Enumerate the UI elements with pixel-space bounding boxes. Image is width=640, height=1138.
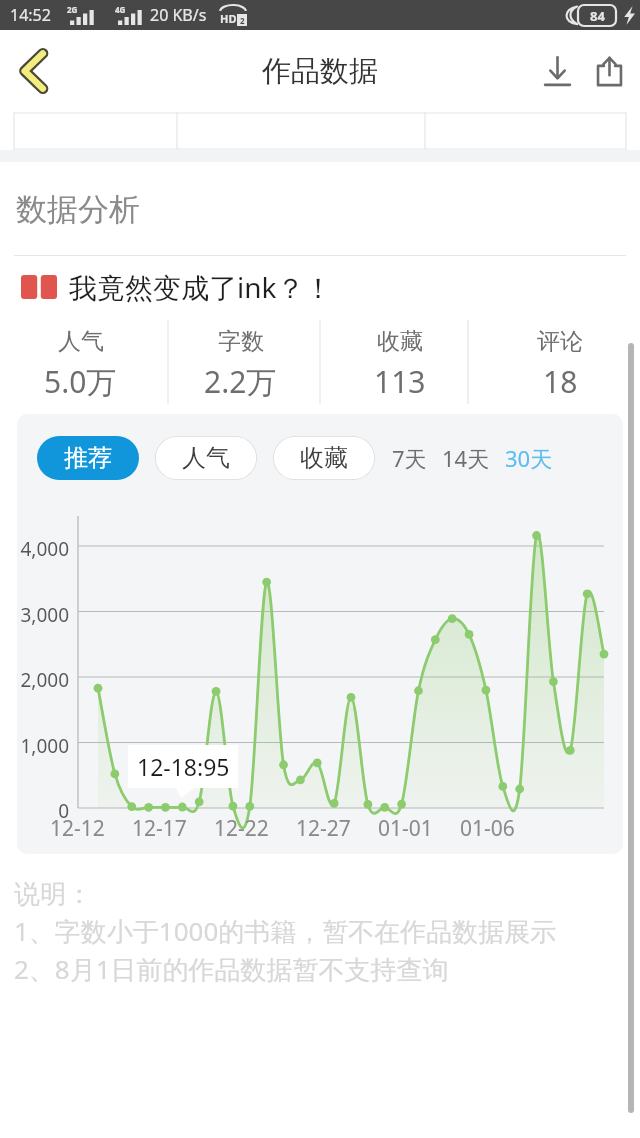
staticText: 数据分析 xyxy=(16,190,140,229)
button[interactable]: 评论 xyxy=(480,318,640,410)
staticText: 说明： xyxy=(14,878,92,911)
staticText: 2.2万 xyxy=(204,361,277,402)
staticText: 12-22 xyxy=(214,814,269,843)
staticText: 作品数据 xyxy=(262,53,378,90)
staticText: 01-01 xyxy=(378,814,433,843)
staticText: 113 xyxy=(374,361,426,402)
staticText: 2、8月1日前的作品数据暂不支持查询 xyxy=(14,951,449,987)
staticText: 18 xyxy=(543,361,578,402)
button[interactable]: 推荐 xyxy=(37,436,139,480)
button[interactable]: Back xyxy=(6,43,62,99)
staticText: 2G xyxy=(67,4,78,15)
staticText: 3,000 xyxy=(20,602,69,628)
staticText: HD xyxy=(220,11,237,26)
button[interactable]: Download xyxy=(530,44,584,98)
button[interactable]: 14天 xyxy=(439,440,493,476)
button[interactable]: 人气 xyxy=(0,318,160,410)
staticText: 14:52 xyxy=(10,4,51,26)
staticText: 人气 xyxy=(58,327,104,356)
staticText: 01-06 xyxy=(460,814,515,843)
staticText: 4,000 xyxy=(20,536,69,562)
staticText: 4G xyxy=(115,4,126,15)
staticText: 收藏 xyxy=(300,443,348,473)
staticText: 20 KB/s xyxy=(150,4,207,26)
staticText: 人气 xyxy=(182,443,230,473)
staticText: 推荐 xyxy=(64,443,112,473)
staticText: 2,000 xyxy=(20,667,69,693)
staticText: 1、字数小于1000的书籍，暂不在作品数据展示 xyxy=(14,913,557,949)
staticText: 12-17 xyxy=(132,814,187,843)
button[interactable]: 收藏 xyxy=(273,436,375,480)
staticText: 评论 xyxy=(537,327,583,356)
staticText: 84 xyxy=(590,7,605,25)
staticText: 字数 xyxy=(218,327,264,356)
staticText: 1,000 xyxy=(20,733,69,759)
staticText: 收藏 xyxy=(377,327,423,356)
button[interactable]: 我竟然变成了ink？！ xyxy=(0,256,640,318)
button[interactable]: 收藏 xyxy=(320,318,480,410)
button[interactable]: 人气 xyxy=(155,436,257,480)
staticText: 我竟然变成了ink？！ xyxy=(69,268,333,306)
button[interactable]: 7天 xyxy=(389,440,430,476)
button[interactable]: 30天 xyxy=(502,440,556,476)
staticText: 5.0万 xyxy=(44,361,117,402)
button[interactable]: 字数 xyxy=(160,318,320,410)
staticText: 0 xyxy=(58,798,69,824)
staticText: 12-18:95 xyxy=(137,751,230,782)
staticText: 12-27 xyxy=(296,814,351,843)
staticText: 12-12 xyxy=(50,814,105,843)
staticText: 2 xyxy=(240,15,245,26)
button[interactable]: Share xyxy=(582,44,636,98)
